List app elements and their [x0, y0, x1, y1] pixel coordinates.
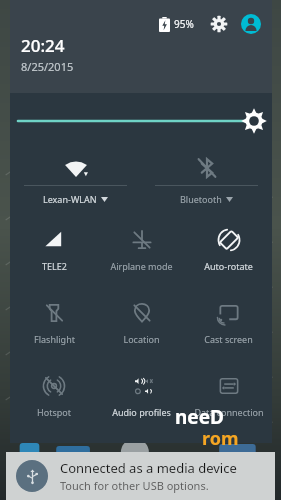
button[interactable]: Data connection [185, 360, 272, 433]
staticText: rom [202, 426, 239, 451]
staticText: 95% [174, 17, 194, 31]
button[interactable]: Connected as a media device [6, 452, 275, 500]
staticText: Flashlight [34, 333, 75, 345]
button[interactable]: Hotspot [10, 360, 98, 433]
staticText: Auto-rotate [204, 260, 253, 272]
staticText: Location [123, 333, 160, 345]
button[interactable]: User profile [238, 11, 264, 37]
staticText: Connected as a media device [60, 459, 237, 477]
button[interactable]: Flashlight [10, 287, 98, 360]
staticText: 20:24 [21, 34, 65, 57]
staticText: www.needrom.com [175, 451, 240, 461]
button[interactable]: TELE2 [10, 214, 98, 287]
staticText: Airplane mode [110, 260, 173, 272]
button[interactable]: Airplane mode [98, 214, 185, 287]
button[interactable]: Auto-rotate [185, 214, 272, 287]
button[interactable]: Location [98, 287, 185, 360]
staticText: Lexan-WLAN [43, 193, 97, 205]
staticText: 8/25/2015 [21, 59, 74, 74]
button[interactable]: Bluetooth [155, 148, 258, 214]
staticText: neeD [175, 404, 224, 430]
button[interactable]: Lexan-WLAN [24, 148, 127, 214]
staticText: Cast screen [204, 333, 253, 345]
button[interactable]: Audio profiles [98, 360, 185, 433]
button[interactable]: Cast screen [185, 287, 272, 360]
staticText: Audio profiles [112, 406, 171, 418]
button[interactable]: Brightness [10, 93, 272, 148]
staticText: Hotspot [37, 406, 71, 418]
button[interactable]: Settings [206, 11, 232, 37]
staticText: Bluetooth [180, 193, 222, 205]
staticText: TELE2 [42, 260, 67, 272]
staticText: Data connection [194, 406, 264, 418]
staticText: Touch for other USB options. [60, 478, 209, 493]
